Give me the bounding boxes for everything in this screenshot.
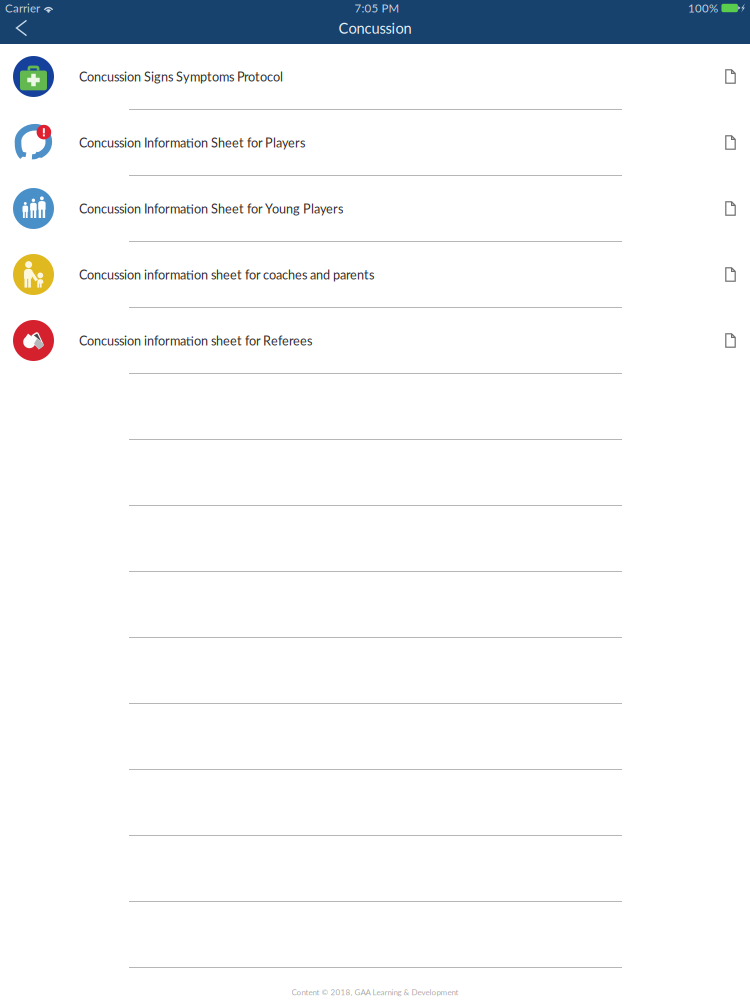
button[interactable]: Concussion information sheet for coaches… — [0, 242, 750, 308]
staticText: 7:05 PM — [354, 1, 399, 15]
staticText: Concussion information sheet for coaches… — [79, 267, 374, 282]
button[interactable]: Concussion Information Sheet for Players — [0, 110, 750, 176]
button[interactable]: Concussion Signs Symptoms Protocol — [0, 44, 750, 110]
staticText: 100% — [688, 1, 718, 15]
button[interactable]: Concussion information sheet for Referee… — [0, 308, 750, 374]
button[interactable]: Back — [0, 16, 41, 44]
staticText: Concussion Information Sheet for Players — [79, 135, 305, 150]
staticText: Carrier — [5, 1, 40, 15]
staticText: Concussion information sheet for Referee… — [79, 333, 312, 348]
staticText: Concussion — [338, 19, 411, 37]
button[interactable]: Concussion Information Sheet for Young P… — [0, 176, 750, 242]
staticText: Concussion Information Sheet for Young P… — [79, 201, 343, 216]
staticText: Content © 2018, GAA Learning & Developme… — [291, 987, 458, 997]
staticText: Concussion Signs Symptoms Protocol — [79, 69, 283, 84]
